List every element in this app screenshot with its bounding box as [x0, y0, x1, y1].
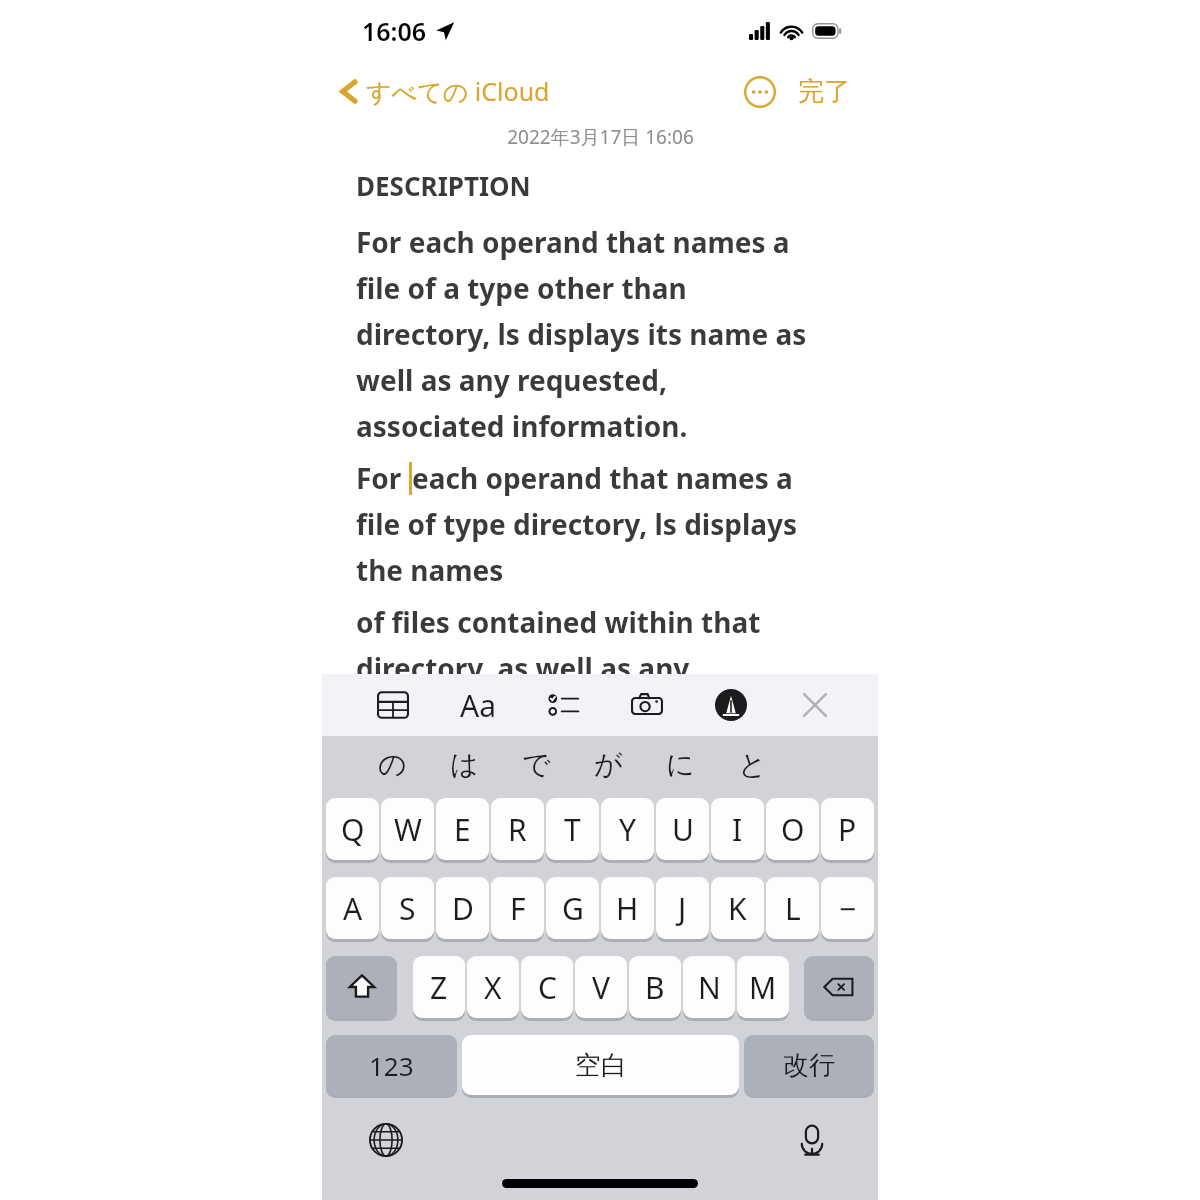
- button[interactable]: B: [629, 956, 681, 1021]
- button[interactable]: 空白: [462, 1035, 739, 1098]
- staticText: file of a type other than: [356, 269, 687, 307]
- staticText: が: [594, 747, 623, 782]
- button[interactable]: Dictation: [786, 1114, 838, 1166]
- staticText: W: [394, 809, 422, 850]
- staticText: D: [452, 888, 474, 929]
- button[interactable]: N: [683, 956, 735, 1021]
- staticText: O: [781, 809, 805, 850]
- button[interactable]: で: [500, 736, 572, 792]
- staticText: Y: [619, 809, 636, 850]
- button[interactable]: V: [575, 956, 627, 1021]
- staticText: well as any requested,: [356, 361, 667, 399]
- staticText: の: [378, 747, 407, 782]
- button[interactable]: Y: [601, 798, 654, 863]
- staticText: Aa: [460, 685, 496, 726]
- button[interactable]: A: [326, 877, 379, 942]
- staticText: B: [645, 967, 665, 1008]
- button[interactable]: T: [546, 798, 599, 863]
- staticText: で: [522, 747, 551, 782]
- staticText: は: [450, 747, 479, 782]
- button[interactable]: E: [436, 798, 489, 863]
- button[interactable]: が: [572, 736, 644, 792]
- staticText: V: [592, 967, 610, 1008]
- button[interactable]: X: [467, 956, 519, 1021]
- staticText: P: [838, 809, 857, 850]
- button[interactable]: G: [546, 877, 599, 942]
- button[interactable]: I: [711, 798, 764, 863]
- button[interactable]: H: [601, 877, 654, 942]
- button[interactable]: の: [356, 736, 428, 792]
- button[interactable]: Aa: [455, 682, 501, 728]
- button[interactable]: D: [436, 877, 489, 942]
- staticText: K: [728, 888, 747, 929]
- staticText: S: [399, 888, 416, 929]
- staticText: 16:06: [362, 14, 427, 48]
- button[interactable]: U: [656, 798, 709, 863]
- staticText: F: [510, 888, 526, 929]
- button[interactable]: Markup: [708, 682, 754, 728]
- button[interactable]: O: [766, 798, 819, 863]
- button[interactable]: K: [711, 877, 764, 942]
- button[interactable]: P: [821, 798, 874, 863]
- button[interactable]: J: [656, 877, 709, 942]
- button[interactable]: Close keyboard: [792, 682, 838, 728]
- button[interactable]: −: [821, 877, 874, 942]
- button[interactable]: Insert table: [370, 682, 416, 728]
- staticText: G: [562, 888, 584, 929]
- staticText: Q: [341, 809, 365, 850]
- staticText: に: [666, 747, 695, 782]
- button[interactable]: は: [428, 736, 500, 792]
- staticText: A: [343, 888, 363, 929]
- button[interactable]: L: [766, 877, 819, 942]
- staticText: For: [356, 459, 409, 497]
- button[interactable]: F: [491, 877, 544, 942]
- staticText: H: [616, 888, 639, 929]
- button[interactable]: S: [381, 877, 434, 942]
- staticText: DESCRIPTION: [356, 168, 531, 203]
- button[interactable]: C: [521, 956, 573, 1021]
- staticText: と: [738, 747, 767, 782]
- button[interactable]: Backspace: [804, 956, 874, 1021]
- staticText: 空白: [575, 1049, 627, 1082]
- staticText: Z: [430, 967, 448, 1008]
- button[interactable]: 改行: [744, 1035, 874, 1098]
- button[interactable]: Switch keyboard: [360, 1114, 412, 1166]
- staticText: file of type directory, ls displays: [356, 505, 798, 543]
- button[interactable]: R: [491, 798, 544, 863]
- staticText: C: [538, 967, 557, 1008]
- button[interactable]: M: [737, 956, 789, 1021]
- staticText: X: [484, 967, 502, 1008]
- button[interactable]: More options: [740, 72, 780, 112]
- staticText: 2022年3月17日 16:06: [507, 124, 694, 150]
- button[interactable]: Shift: [326, 956, 397, 1021]
- staticText: 完了: [798, 75, 850, 108]
- staticText: 123: [369, 1048, 414, 1083]
- button[interactable]: Camera: [624, 682, 670, 728]
- staticText: J: [678, 888, 687, 929]
- staticText: associated information.: [356, 407, 688, 445]
- staticText: N: [698, 967, 721, 1008]
- button[interactable]: に: [644, 736, 716, 792]
- button[interactable]: W: [381, 798, 434, 863]
- staticText: R: [508, 809, 527, 850]
- button[interactable]: 123: [326, 1035, 457, 1098]
- staticText: of files contained within that: [356, 603, 761, 641]
- staticText: For each operand that names a: [356, 223, 790, 261]
- staticText: M: [749, 967, 777, 1008]
- staticText: each operand that names a: [412, 459, 793, 497]
- staticText: L: [785, 888, 801, 929]
- button[interactable]: Q: [326, 798, 379, 863]
- staticText: I: [732, 809, 743, 850]
- button[interactable]: すべての iCloud: [334, 70, 556, 112]
- button[interactable]: と: [716, 736, 788, 792]
- staticText: U: [672, 809, 694, 850]
- button[interactable]: 完了: [794, 71, 854, 112]
- button[interactable]: Checklist: [540, 682, 586, 728]
- button[interactable]: Z: [413, 956, 465, 1021]
- staticText: directory, ls displays its name as: [356, 315, 807, 353]
- staticText: directory, as well as any: [356, 649, 690, 687]
- staticText: 改行: [783, 1049, 835, 1082]
- staticText: the names: [356, 551, 504, 589]
- button[interactable]: DESCRIPTION: [356, 168, 860, 691]
- staticText: T: [564, 809, 581, 850]
